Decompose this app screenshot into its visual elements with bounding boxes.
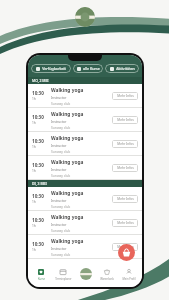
button[interactable]: 10:30: [28, 108, 142, 132]
staticText: 1h: [32, 224, 36, 228]
staticText: 10:30: [32, 114, 44, 120]
staticText: 10:30: [32, 217, 44, 223]
staticText: Mehr Infos: [117, 118, 134, 122]
button[interactable]: Mehr Infos: [112, 92, 138, 100]
staticText: Sunway club: [51, 125, 71, 129]
button[interactable]: Mehr Infos: [112, 140, 138, 148]
staticText: 1h: [32, 169, 36, 173]
staticText: 1h: [32, 200, 36, 204]
button[interactable]: 10:30: [28, 235, 142, 259]
staticText: Walking yoga: [51, 135, 84, 142]
button[interactable]: Home: [78, 266, 93, 281]
staticText: 1h: [32, 145, 36, 149]
staticText: Mehr Infos: [117, 94, 134, 98]
button[interactable]: Kurse: [30, 265, 52, 287]
staticText: Walking yoga: [51, 111, 84, 118]
button[interactable]: Mein Profil: [118, 265, 140, 287]
staticText: Walking yoga: [51, 190, 84, 197]
staticText: Mehr Infos: [117, 166, 134, 170]
staticText: Instructor: [51, 95, 67, 99]
staticText: Instructor: [51, 119, 67, 123]
staticText: Walking yoga: [51, 159, 84, 166]
staticText: Mehr Infos: [117, 142, 134, 146]
staticText: Mehr Infos: [117, 197, 134, 201]
button[interactable]: alle Kurse: [73, 64, 103, 73]
button[interactable]: 10:30: [28, 187, 142, 211]
staticText: alle Kurse: [83, 66, 100, 71]
staticText: Instructor: [51, 198, 67, 202]
staticText: 10:30: [32, 138, 44, 144]
staticText: 1h: [32, 248, 36, 252]
staticText: Sunway club: [51, 101, 71, 105]
button[interactable]: Logo: [75, 7, 95, 27]
button[interactable]: Verfügbarkeit: [31, 64, 71, 73]
staticText: 10:30: [32, 162, 44, 168]
button[interactable]: Mehr Infos: [112, 195, 138, 203]
staticText: Terminplaner: [55, 277, 72, 281]
staticText: 1h: [32, 121, 36, 125]
staticText: MO, 2 MEI: [32, 78, 49, 83]
staticText: Sunway club: [51, 173, 71, 177]
staticText: 1h: [32, 97, 36, 101]
staticText: DI, 3 MEI: [32, 181, 47, 186]
button[interactable]: 10:30: [28, 156, 142, 180]
staticText: 10:30: [32, 241, 44, 247]
button[interactable]: Mehr Infos: [112, 164, 138, 172]
staticText: Verfügbarkeit: [42, 66, 66, 71]
staticText: 10:30: [32, 90, 44, 96]
staticText: Warenkorb: [100, 277, 114, 281]
staticText: Instructor: [51, 143, 67, 147]
button[interactable]: 10:30: [28, 84, 142, 108]
staticText: Kurse: [38, 277, 45, 281]
button[interactable]: 10:30: [28, 211, 142, 235]
staticText: Instructor: [51, 222, 67, 226]
staticText: Walking yoga: [51, 214, 84, 221]
button[interactable]: 10:30: [28, 132, 142, 156]
button[interactable]: Mehr Infos: [112, 219, 138, 227]
staticText: Sunway club: [51, 228, 71, 232]
staticText: Sunway club: [51, 252, 71, 256]
staticText: Aktivitäten: [116, 66, 135, 71]
button[interactable]: Mehr Infos: [112, 243, 138, 251]
staticText: Instructor: [51, 246, 67, 250]
button[interactable]: Aktivitäten: [105, 64, 139, 73]
staticText: Mein Profil: [122, 277, 136, 281]
button[interactable]: Cart: [118, 244, 135, 261]
button[interactable]: Mehr Infos: [112, 116, 138, 124]
staticText: Mehr Infos: [117, 221, 134, 225]
staticText: Walking yoga: [51, 87, 84, 94]
staticText: Sunway club: [51, 204, 71, 208]
staticText: Instructor: [51, 167, 67, 171]
button[interactable]: Terminplaner: [52, 265, 74, 287]
button[interactable]: Warenkorb: [96, 265, 118, 287]
staticText: Sunway club: [51, 149, 71, 153]
staticText: Mehr Infos: [117, 245, 134, 249]
staticText: Walking yoga: [51, 238, 84, 245]
staticText: 10:30: [32, 193, 44, 199]
